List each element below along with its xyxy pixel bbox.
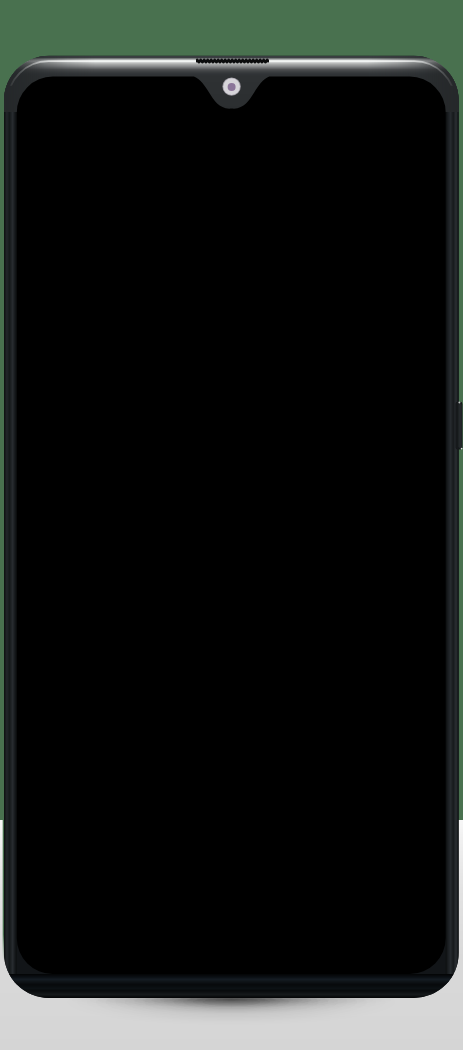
button[interactable]: Smartphone product photo	[0, 0, 463, 1050]
